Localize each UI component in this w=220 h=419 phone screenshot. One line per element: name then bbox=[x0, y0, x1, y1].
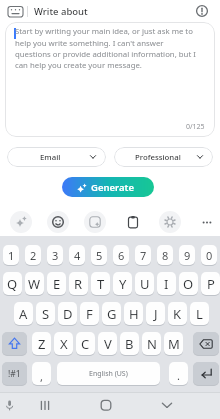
button[interactable]: P bbox=[201, 272, 220, 295]
button[interactable]: F bbox=[80, 302, 99, 325]
staticText: C bbox=[81, 335, 90, 353]
staticText: U bbox=[140, 275, 150, 293]
staticText: O bbox=[183, 275, 194, 293]
button[interactable]: 4 bbox=[69, 245, 85, 265]
button[interactable]: R bbox=[69, 272, 88, 295]
staticText: 5 bbox=[96, 248, 103, 263]
button[interactable]: M bbox=[164, 332, 183, 355]
button[interactable] bbox=[193, 362, 219, 385]
button[interactable]: H bbox=[124, 302, 143, 325]
button[interactable]: I bbox=[157, 272, 176, 295]
staticText: E bbox=[53, 275, 61, 293]
staticText: !#1 bbox=[8, 368, 21, 380]
button[interactable] bbox=[193, 332, 219, 355]
button[interactable]: Y bbox=[113, 272, 132, 295]
staticText: Start by writing your main idea, or just… bbox=[15, 26, 196, 70]
staticText: D bbox=[63, 305, 73, 323]
staticText: T bbox=[97, 275, 105, 293]
staticText: 2 bbox=[30, 248, 37, 263]
staticText: V bbox=[104, 335, 112, 353]
staticText: Write about bbox=[34, 5, 88, 18]
staticText: 9 bbox=[184, 248, 191, 263]
button[interactable]: N bbox=[142, 332, 161, 355]
button[interactable]: , bbox=[32, 362, 51, 385]
staticText: Z bbox=[38, 335, 46, 353]
button[interactable] bbox=[195, 4, 209, 18]
button[interactable] bbox=[47, 211, 69, 233]
button[interactable]: Q bbox=[3, 272, 22, 295]
button[interactable]: 7 bbox=[135, 245, 151, 265]
staticText: N bbox=[147, 335, 157, 353]
button[interactable] bbox=[2, 332, 27, 355]
staticText: J bbox=[154, 305, 158, 323]
staticText: X bbox=[60, 335, 68, 353]
button[interactable]: 6 bbox=[113, 245, 129, 265]
button[interactable]: 9 bbox=[179, 245, 195, 265]
staticText: L bbox=[196, 305, 203, 323]
button[interactable] bbox=[122, 211, 144, 233]
button[interactable] bbox=[6, 4, 26, 19]
button[interactable]: J bbox=[146, 302, 165, 325]
staticText: 8 bbox=[162, 248, 169, 263]
staticText: 0 bbox=[206, 248, 213, 263]
staticText: . bbox=[177, 368, 180, 383]
staticText: Y bbox=[119, 275, 127, 293]
button[interactable]: Email bbox=[7, 147, 106, 167]
button[interactable] bbox=[3, 399, 16, 412]
button[interactable]: G bbox=[102, 302, 121, 325]
button[interactable]: U bbox=[135, 272, 154, 295]
button[interactable] bbox=[196, 211, 218, 233]
button[interactable]: !#1 bbox=[2, 362, 27, 385]
staticText: 6 bbox=[118, 248, 125, 263]
staticText: 7 bbox=[140, 248, 147, 263]
button[interactable]: 1 bbox=[3, 245, 19, 265]
staticText: Generate bbox=[91, 181, 134, 194]
staticText: P bbox=[207, 275, 215, 293]
button[interactable] bbox=[38, 399, 52, 412]
button[interactable]: L bbox=[190, 302, 209, 325]
button[interactable] bbox=[160, 400, 174, 411]
button[interactable]: X bbox=[54, 332, 73, 355]
staticText: G bbox=[107, 305, 117, 323]
button[interactable]: Start by writing your main idea, or just… bbox=[5, 22, 215, 137]
button[interactable]: Generate bbox=[62, 177, 154, 197]
button[interactable]: . bbox=[169, 362, 188, 385]
button[interactable]: D bbox=[58, 302, 77, 325]
staticText: S bbox=[42, 305, 50, 323]
button[interactable] bbox=[84, 211, 106, 233]
button[interactable]: Professional bbox=[114, 147, 213, 167]
staticText: B bbox=[125, 335, 134, 353]
button[interactable]: 3 bbox=[47, 245, 63, 265]
staticText: 4 bbox=[74, 248, 81, 263]
button[interactable]: W bbox=[25, 272, 44, 295]
button[interactable]: Z bbox=[32, 332, 51, 355]
staticText: R bbox=[74, 275, 83, 293]
staticText: W bbox=[28, 275, 41, 293]
button[interactable]: C bbox=[76, 332, 95, 355]
button[interactable]: V bbox=[98, 332, 117, 355]
button[interactable]: A bbox=[14, 302, 33, 325]
staticText: M bbox=[168, 335, 180, 353]
staticText: I bbox=[164, 275, 169, 293]
button[interactable] bbox=[99, 399, 113, 412]
staticText: Q bbox=[7, 275, 18, 293]
button[interactable]: T bbox=[91, 272, 110, 295]
staticText: H bbox=[129, 305, 139, 323]
button[interactable]: B bbox=[120, 332, 139, 355]
button[interactable] bbox=[159, 211, 181, 233]
button[interactable]: 8 bbox=[157, 245, 173, 265]
button[interactable]: S bbox=[36, 302, 55, 325]
staticText: Email bbox=[40, 152, 61, 163]
button[interactable]: K bbox=[168, 302, 187, 325]
button[interactable]: 5 bbox=[91, 245, 107, 265]
staticText: 1 bbox=[8, 248, 15, 263]
button[interactable]: E bbox=[47, 272, 66, 295]
button[interactable]: O bbox=[179, 272, 198, 295]
staticText: 3 bbox=[52, 248, 59, 263]
staticText: 0/125 bbox=[186, 122, 205, 132]
button[interactable]: 0 bbox=[201, 245, 217, 265]
button[interactable] bbox=[10, 211, 32, 233]
button[interactable]: English (US) bbox=[57, 362, 160, 385]
staticText: F bbox=[86, 305, 93, 323]
button[interactable]: 2 bbox=[25, 245, 41, 265]
